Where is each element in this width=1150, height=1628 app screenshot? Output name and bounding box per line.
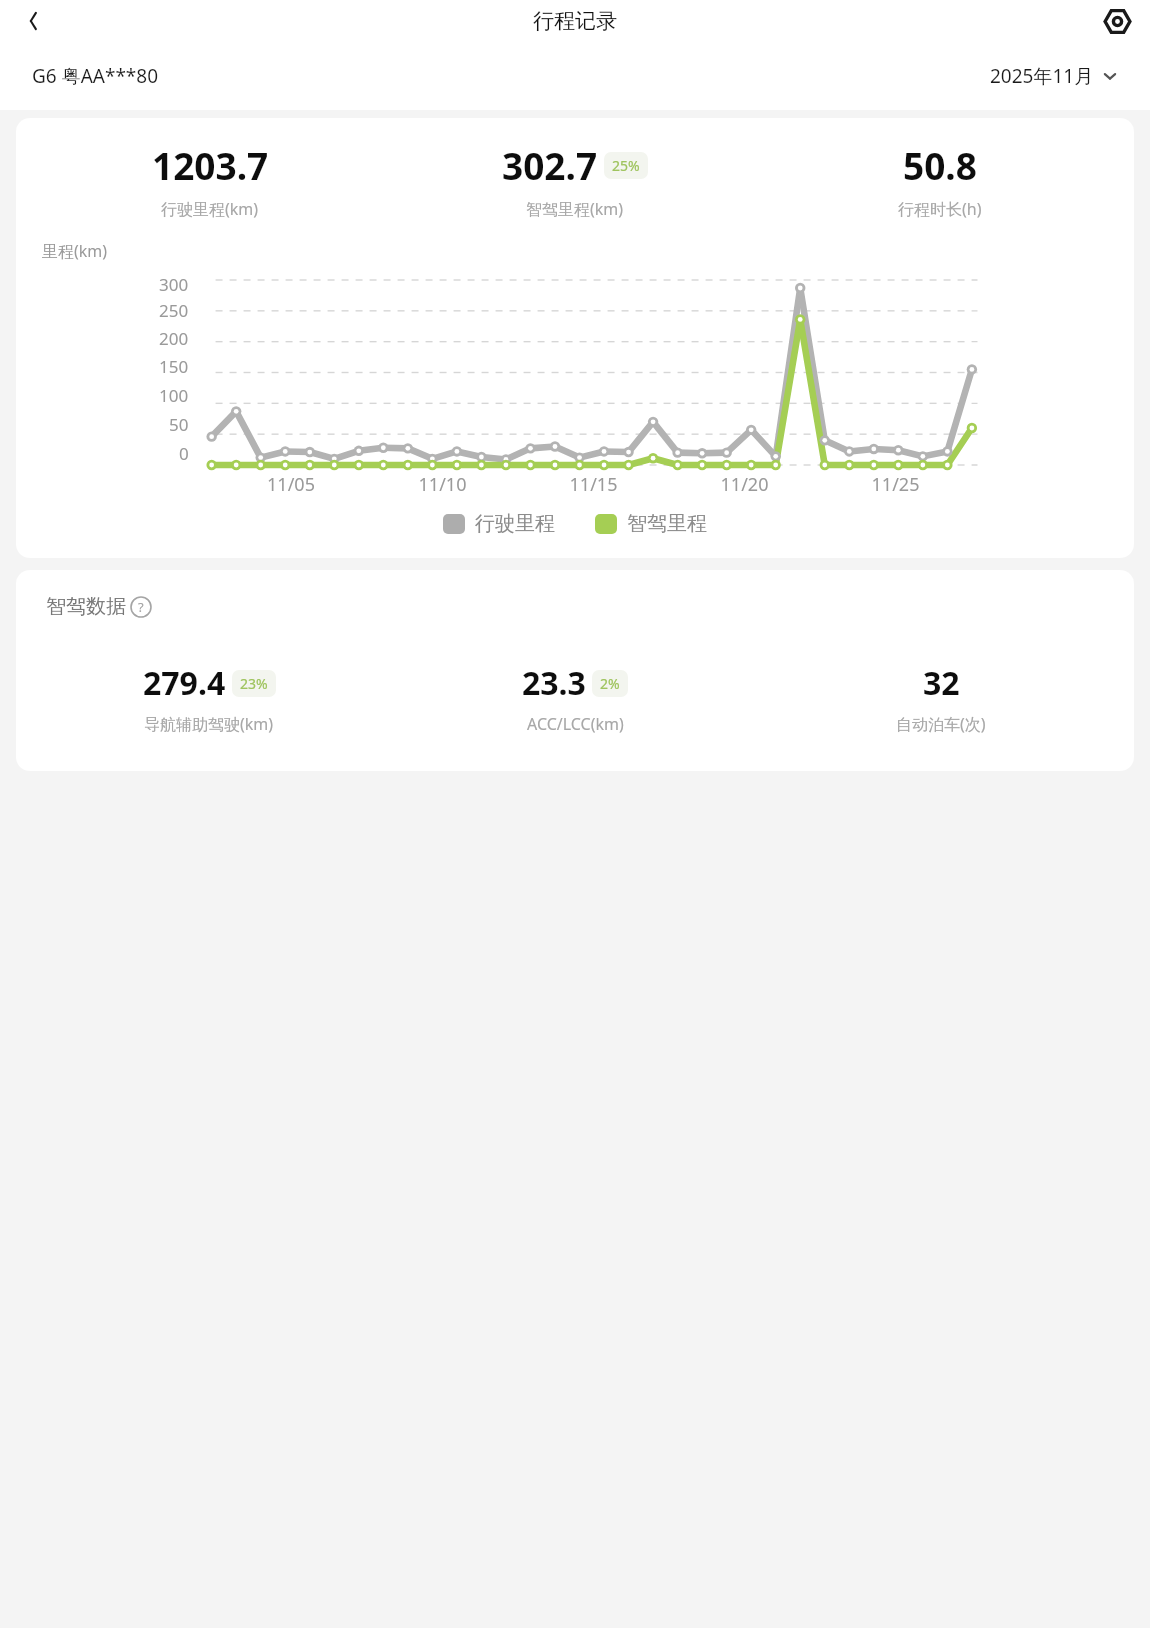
staticText: 300 (159, 273, 189, 296)
staticText: 0 (179, 442, 189, 465)
staticText: 智驾数据 (46, 594, 126, 619)
staticText: 自动泊车(次) (896, 713, 986, 735)
staticText: 11/05 (215, 472, 367, 497)
button[interactable]: 2025年11月 (990, 63, 1118, 89)
staticText: 23.3 (522, 661, 586, 705)
staticText: 150 (159, 355, 189, 378)
staticText: 导航辅助驾驶(km) (144, 713, 274, 735)
staticText: 2% (600, 674, 620, 693)
button[interactable]: 行驶里程 (443, 511, 555, 536)
staticText: 行程时长(h) (898, 198, 982, 220)
other: Help (130, 596, 152, 618)
staticText: 行程记录 (533, 8, 617, 34)
staticText: G6 粤AA***80 (32, 63, 159, 89)
staticText: ACC/LCC(km) (527, 713, 624, 735)
staticText: 279.4 (143, 661, 226, 705)
staticText: 25% (612, 156, 640, 175)
staticText: 100 (159, 384, 189, 407)
staticText: 智驾里程(km) (526, 198, 624, 220)
staticText: 250 (159, 299, 189, 322)
staticText: 11/15 (518, 472, 669, 497)
button[interactable]: 智驾数据 (46, 594, 152, 619)
button[interactable]: Settings (1098, 2, 1136, 40)
staticText: 50.8 (903, 140, 977, 190)
staticText: 2025年11月 (990, 63, 1094, 89)
staticText: 里程(km) (42, 240, 108, 262)
staticText: 智驾里程 (627, 511, 707, 536)
staticText: 302.7 (502, 140, 598, 190)
staticText: ? (138, 598, 144, 616)
staticText: 行驶里程(km) (161, 198, 259, 220)
staticText: 11/10 (367, 472, 518, 497)
staticText: 11/20 (669, 472, 820, 497)
staticText: 23% (240, 674, 268, 693)
staticText: 11/25 (820, 472, 971, 497)
button[interactable]: Back (14, 2, 52, 40)
staticText: 50 (169, 413, 189, 436)
staticText: 32 (923, 661, 960, 705)
staticText: 200 (159, 327, 189, 350)
staticText: 行驶里程 (475, 511, 555, 536)
button[interactable]: 智驾里程 (595, 511, 707, 536)
staticText: 1203.7 (152, 140, 269, 190)
